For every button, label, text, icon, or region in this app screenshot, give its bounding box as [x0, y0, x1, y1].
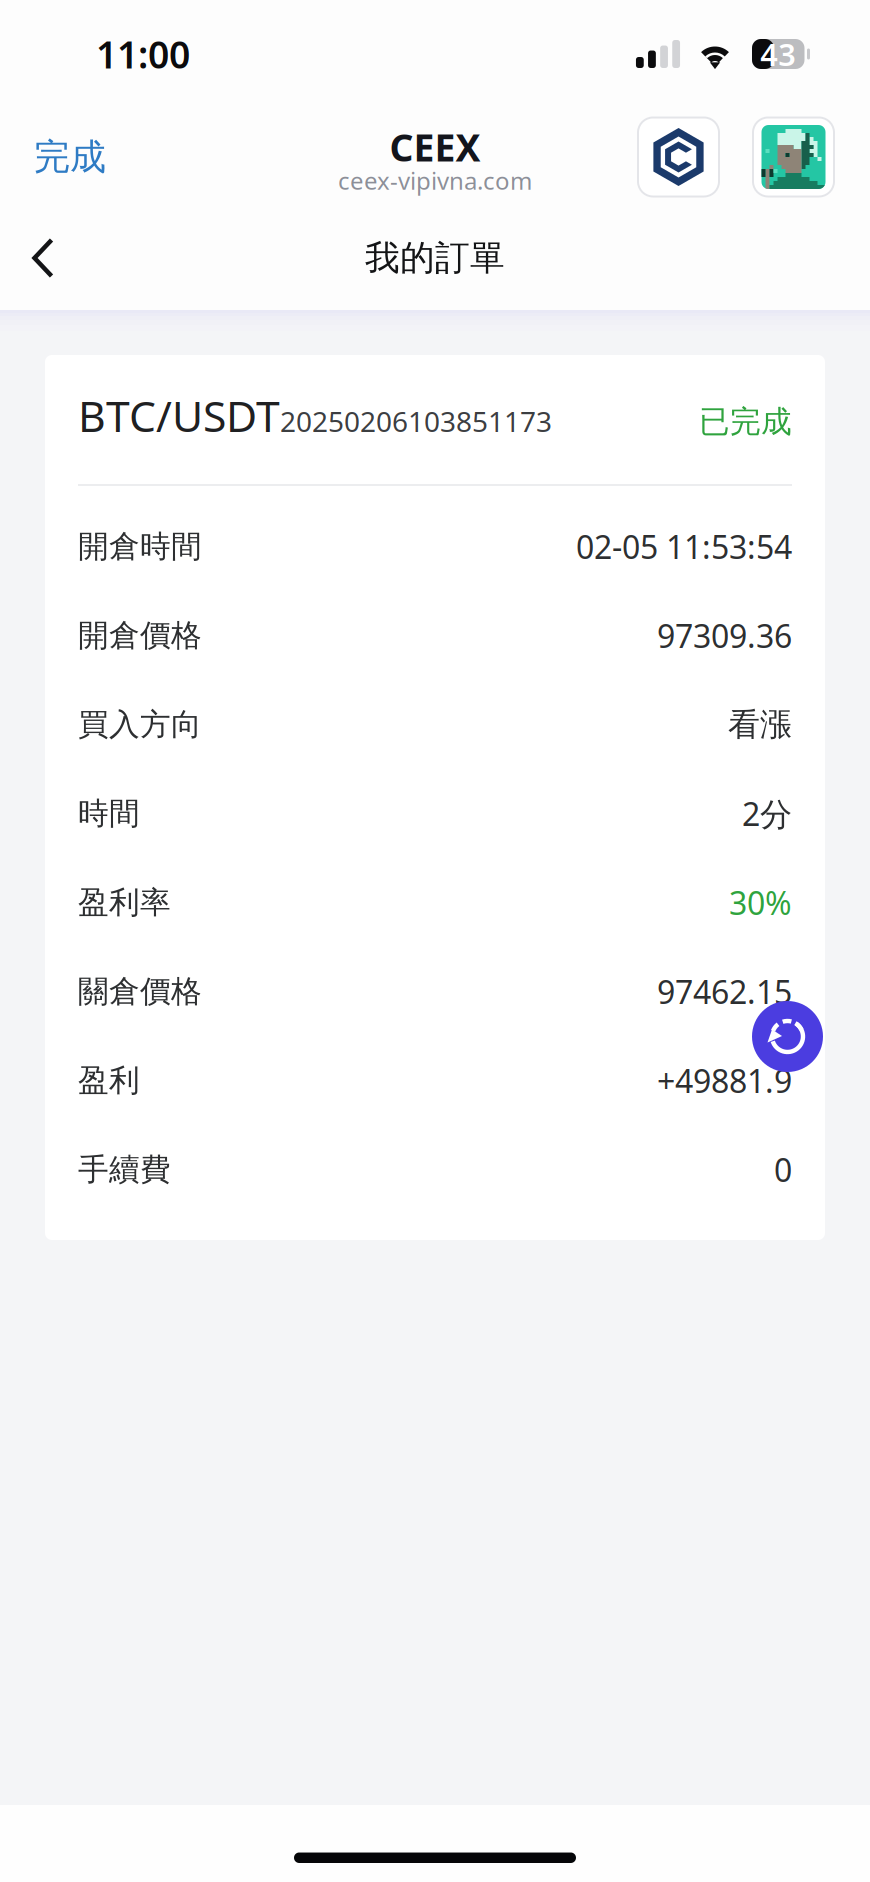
- staticText: 97462.15: [657, 970, 792, 1013]
- button[interactable]: Site icon: [638, 117, 719, 196]
- staticText: 盈利: [78, 1062, 140, 1099]
- staticText: 看漲: [728, 705, 792, 744]
- staticText: +49881.9: [657, 1059, 792, 1102]
- staticText: 02-05 11:53:54: [576, 525, 792, 568]
- staticText: 11:00: [96, 29, 190, 79]
- button[interactable]: 完成: [0, 106, 140, 208]
- staticText: 完成: [34, 135, 106, 179]
- staticText: 時間: [78, 795, 140, 832]
- staticText: 30%: [729, 881, 792, 924]
- staticText: 關倉價格: [78, 973, 202, 1010]
- staticText: 盈利率: [78, 884, 171, 921]
- staticText: 買入方向: [78, 706, 202, 743]
- staticText: CEEX: [389, 122, 480, 172]
- button[interactable]: Back: [0, 208, 86, 308]
- staticText: ceex-vipivna.com: [338, 165, 532, 196]
- staticText: 已完成: [699, 403, 792, 441]
- button[interactable]: Profile: [753, 117, 834, 196]
- staticText: 20250206103851173: [280, 403, 552, 440]
- staticText: 97309.36: [657, 614, 792, 657]
- button[interactable]: Refresh: [752, 1001, 823, 1072]
- staticText: 手續費: [78, 1151, 171, 1188]
- staticText: 開倉時間: [78, 528, 202, 565]
- staticText: 開倉價格: [78, 617, 202, 654]
- staticText: 43: [760, 34, 796, 74]
- staticText: 我的訂單: [365, 237, 505, 279]
- staticText: 2分: [742, 792, 792, 835]
- staticText: BTC/USDT: [78, 387, 280, 444]
- staticText: 0: [774, 1148, 792, 1191]
